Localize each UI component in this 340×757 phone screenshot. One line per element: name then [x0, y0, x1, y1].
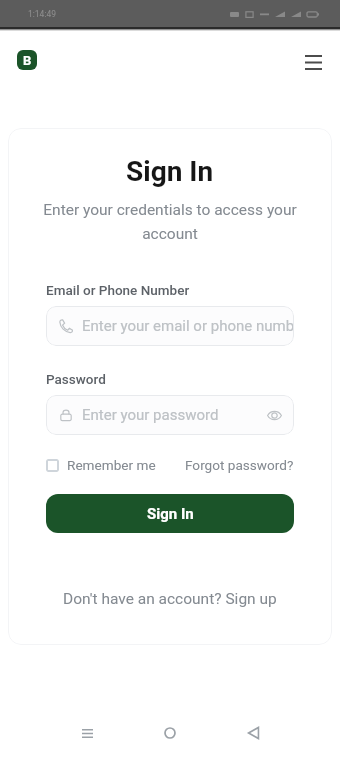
staticText: Enter your credentials to access your ac… — [38, 201, 302, 243]
button[interactable]: Sign In — [46, 494, 294, 533]
button[interactable]: Recent apps — [66, 712, 108, 754]
button[interactable]: Home — [149, 712, 191, 754]
staticText: Sign In — [147, 505, 194, 523]
staticText: B — [23, 53, 32, 68]
staticText: Email or Phone Number — [46, 282, 190, 298]
staticText: Enter your password — [82, 406, 219, 424]
button[interactable]: Forgot password? — [185, 457, 294, 473]
button[interactable]: Enter your email or phone number — [46, 306, 294, 346]
button[interactable]: Remember me — [46, 457, 156, 473]
button[interactable]: Back — [232, 712, 274, 754]
staticText: Sign In — [126, 155, 214, 188]
button[interactable]: Show password — [265, 406, 283, 424]
staticText: 1:14:49 — [28, 9, 57, 19]
staticText: Remember me — [67, 457, 156, 473]
button[interactable]: Logo — [17, 50, 37, 70]
staticText: Forgot password? — [185, 457, 294, 473]
staticText: Enter your email or phone number — [82, 317, 294, 335]
staticText: Password — [46, 371, 106, 387]
staticText: Don't have an account? Sign up — [63, 590, 277, 608]
button[interactable]: Menu — [299, 48, 327, 76]
button[interactable]: Enter your password — [46, 395, 294, 435]
button[interactable]: Don't have an account? Sign up — [63, 590, 277, 608]
